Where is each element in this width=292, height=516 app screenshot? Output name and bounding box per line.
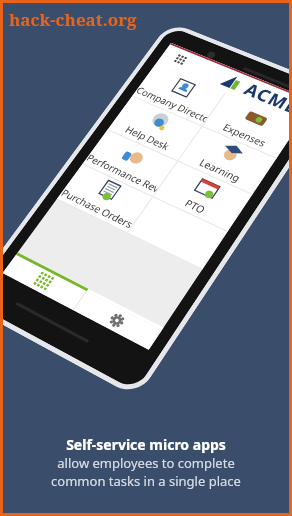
staticText: Purchase Orders xyxy=(58,186,136,231)
button[interactable]: Apps xyxy=(3,255,86,310)
staticText: Company Directory xyxy=(134,84,211,124)
staticText: Help Desk xyxy=(122,123,173,153)
staticText: hack-cheat.org xyxy=(9,8,137,31)
button[interactable]: Menu xyxy=(167,49,195,72)
button[interactable]: Settings xyxy=(74,291,162,350)
button[interactable]: Purchase Orders xyxy=(57,164,152,232)
staticText: Learning xyxy=(197,156,243,184)
staticText: common tasks in a single place xyxy=(51,472,241,490)
button[interactable]: Learning xyxy=(178,127,276,194)
button[interactable]: Expenses xyxy=(203,93,292,158)
button[interactable]: Help Desk xyxy=(108,96,201,160)
staticText: Performance Review xyxy=(84,151,162,194)
staticText: allow employees to complete xyxy=(57,454,235,472)
button[interactable]: Company Directory xyxy=(133,64,225,126)
staticText: ACME xyxy=(240,78,292,119)
staticText: Expenses xyxy=(220,121,269,149)
staticText: Self-service micro apps xyxy=(66,435,226,454)
button[interactable]: Performance Review xyxy=(83,130,177,196)
staticText: PTO xyxy=(182,196,208,216)
button[interactable]: PTO xyxy=(153,161,252,231)
